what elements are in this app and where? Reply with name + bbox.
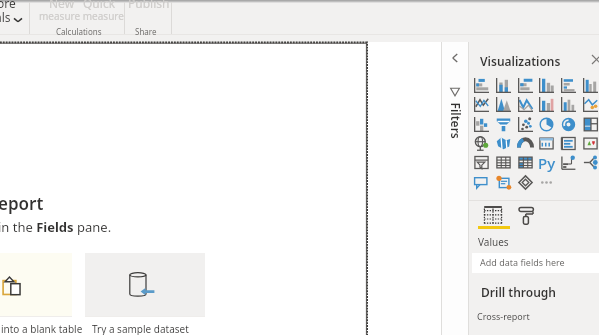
button[interactable]: Visual type 28 [537,153,556,172]
staticText: Filters [447,102,463,139]
staticText: measure measure [39,9,124,23]
staticText: Drill through [481,284,557,300]
staticText: Try a sample dataset [92,322,189,335]
button[interactable]: Visual type 5 [559,76,578,95]
staticText: Visualizations [480,53,561,69]
button[interactable]: Visual type 14 [494,115,513,134]
staticText: into a blank table [1,322,83,335]
button[interactable]: Visual type 9 [516,95,535,114]
button[interactable]: Visual type 30 [581,153,599,172]
staticText: Quick [83,0,116,11]
staticText: in the Fields pane. [0,218,112,236]
button[interactable]: Visual type 11 [559,95,578,114]
staticText: Values [478,235,509,249]
button[interactable]: Visual type 4 [537,76,556,95]
button[interactable]: Fields [483,205,503,225]
button[interactable]: into a blank table [0,253,72,335]
button[interactable]: Visual type 32 [494,173,513,192]
button[interactable]: Visual type 15 [516,115,535,134]
staticText: als [0,9,11,25]
button[interactable]: Visual type 2 [494,76,513,95]
button[interactable]: Visual type 17 [559,115,578,134]
button[interactable]: Visual type 6 [581,76,599,95]
staticText: Add data fields here [480,256,565,268]
button[interactable]: Close visualizations pane [591,54,599,65]
button[interactable]: Visual type 20 [494,134,513,153]
staticText: Share [135,26,157,37]
button[interactable]: Visual type 13 [472,115,491,134]
button[interactable]: Add data fields here [472,253,599,273]
button[interactable]: Visual type 18 [581,115,599,134]
staticText: New [49,0,75,11]
staticText: Py [538,153,556,172]
button[interactable]: Visual type 3 [516,76,535,95]
button[interactable]: Visual type 24 [581,134,599,153]
staticText: eport [0,192,44,215]
button[interactable]: Visual type 33 [516,173,535,192]
button[interactable]: Visual type 26 [494,153,513,172]
button[interactable]: Visual type 1 [472,76,491,95]
button[interactable]: Visual type 21 [516,134,535,153]
button[interactable]: Visual type 22 [537,134,556,153]
button[interactable]: Visual type 31 [472,173,491,192]
staticText: Calculations [56,26,102,37]
staticText: Publish [128,0,170,11]
button[interactable]: Visual type 8 [494,95,513,114]
button[interactable]: Try a sample dataset [85,253,205,335]
button[interactable]: Visual type 27 [516,153,535,172]
button[interactable]: Visual type 23 [559,134,578,153]
button[interactable]: Visual type 10 [537,95,556,114]
button[interactable]: Visual type 12 [581,95,599,114]
button[interactable]: Format [517,205,537,225]
button[interactable]: Visual type 29 [559,153,578,172]
button[interactable]: Visual type 19 [472,134,491,153]
staticText: ore [0,0,16,11]
button[interactable]: Visual type 25 [472,153,491,172]
button[interactable]: Visual type 34 [537,173,556,192]
staticText: Cross-report [477,310,530,322]
button[interactable]: Visual type 7 [472,95,491,114]
button[interactable]: Visual type 16 [537,115,556,134]
button[interactable]: Expand filters pane [448,51,462,65]
